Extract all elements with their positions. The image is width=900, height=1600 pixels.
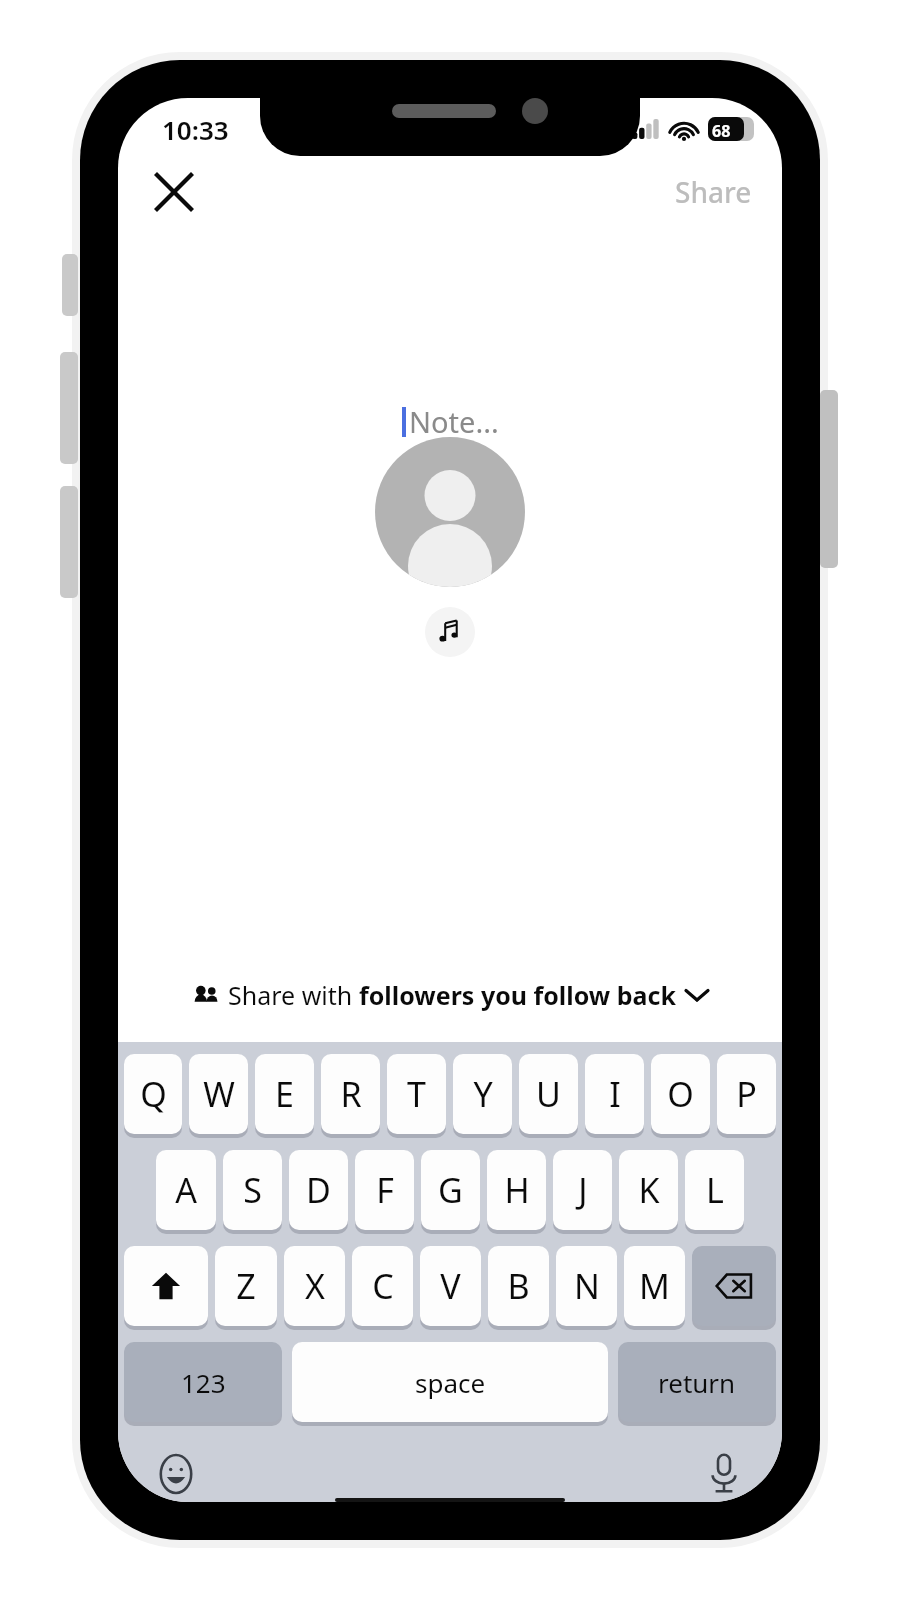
button[interactable]: Q bbox=[124, 1054, 182, 1134]
button[interactable]: F bbox=[355, 1150, 414, 1230]
staticText: Z bbox=[236, 1263, 256, 1309]
staticText: B bbox=[507, 1263, 530, 1309]
staticText: Note... bbox=[409, 402, 499, 441]
staticText: return bbox=[658, 1365, 736, 1400]
staticText: M bbox=[639, 1263, 670, 1309]
button[interactable]: Share bbox=[665, 167, 762, 217]
staticText: A bbox=[175, 1167, 197, 1213]
button[interactable]: A bbox=[156, 1150, 216, 1230]
staticText: P bbox=[736, 1071, 757, 1117]
button[interactable]: E bbox=[255, 1054, 314, 1134]
button[interactable]: P bbox=[717, 1054, 776, 1134]
button[interactable]: 123 bbox=[124, 1342, 282, 1422]
staticText: 10:33 bbox=[162, 112, 229, 147]
button[interactable]: Emoji bbox=[152, 1450, 200, 1498]
button[interactable]: B bbox=[488, 1246, 549, 1326]
staticText: G bbox=[438, 1167, 463, 1213]
staticText: O bbox=[667, 1071, 694, 1117]
staticText: Y bbox=[473, 1071, 493, 1117]
staticText: H bbox=[504, 1167, 530, 1213]
staticText: L bbox=[706, 1167, 724, 1213]
button[interactable]: Z bbox=[215, 1246, 277, 1326]
staticText: Q bbox=[140, 1071, 167, 1117]
button[interactable]: J bbox=[553, 1150, 612, 1230]
staticText: I bbox=[609, 1071, 621, 1117]
staticText: C bbox=[372, 1263, 394, 1309]
staticText: space bbox=[415, 1365, 486, 1400]
button[interactable]: Shift bbox=[124, 1246, 208, 1326]
button[interactable]: W bbox=[189, 1054, 248, 1134]
staticText: S bbox=[243, 1167, 262, 1213]
button[interactable]: Share with bbox=[182, 972, 718, 1018]
button[interactable]: H bbox=[487, 1150, 546, 1230]
button[interactable]: Backspace bbox=[692, 1246, 776, 1326]
button[interactable]: K bbox=[619, 1150, 678, 1230]
staticText: E bbox=[275, 1071, 294, 1117]
button[interactable]: D bbox=[289, 1150, 348, 1230]
button[interactable]: Add music bbox=[425, 607, 475, 657]
button[interactable]: G bbox=[421, 1150, 480, 1230]
staticText: N bbox=[574, 1263, 600, 1309]
button[interactable]: L bbox=[685, 1150, 744, 1230]
staticText: U bbox=[536, 1071, 561, 1117]
button[interactable]: return bbox=[618, 1342, 776, 1422]
staticText: followers you follow back bbox=[359, 978, 676, 1012]
button[interactable]: N bbox=[556, 1246, 617, 1326]
staticText: J bbox=[578, 1167, 588, 1213]
staticText: W bbox=[203, 1071, 235, 1117]
button[interactable]: C bbox=[352, 1246, 413, 1326]
button[interactable]: U bbox=[519, 1054, 578, 1134]
staticText: Share bbox=[675, 173, 752, 211]
staticText: 123 bbox=[181, 1365, 226, 1400]
button[interactable]: T bbox=[387, 1054, 446, 1134]
staticText: V bbox=[440, 1263, 461, 1309]
staticText: X bbox=[305, 1263, 325, 1309]
button[interactable]: O bbox=[651, 1054, 710, 1134]
button[interactable]: space bbox=[292, 1342, 608, 1422]
staticText: Share with bbox=[228, 978, 359, 1012]
staticText: D bbox=[306, 1167, 331, 1213]
staticText: F bbox=[376, 1167, 394, 1213]
button[interactable]: Note... bbox=[380, 390, 521, 453]
staticText: 68 bbox=[712, 120, 731, 142]
staticText: T bbox=[407, 1071, 426, 1117]
button[interactable]: I bbox=[585, 1054, 644, 1134]
button[interactable]: Close bbox=[146, 164, 202, 220]
staticText: R bbox=[340, 1071, 362, 1117]
button[interactable]: X bbox=[284, 1246, 345, 1326]
button[interactable]: M bbox=[624, 1246, 685, 1326]
button[interactable]: Y bbox=[453, 1054, 512, 1134]
staticText: K bbox=[638, 1167, 660, 1213]
button[interactable]: S bbox=[223, 1150, 282, 1230]
button[interactable]: R bbox=[321, 1054, 380, 1134]
button[interactable]: Dictation bbox=[700, 1450, 748, 1498]
button[interactable]: V bbox=[420, 1246, 481, 1326]
